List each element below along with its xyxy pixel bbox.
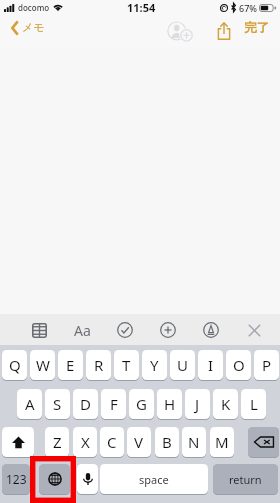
staticText: D	[80, 394, 91, 414]
button[interactable]: F	[101, 389, 126, 419]
button[interactable]: G	[129, 389, 154, 419]
staticText: return	[229, 472, 262, 487]
staticText: Z	[53, 432, 62, 452]
staticText: S	[53, 394, 62, 414]
staticText: X	[81, 432, 90, 452]
staticText: T	[122, 355, 131, 375]
button[interactable]: A	[17, 389, 42, 419]
button[interactable]: return	[213, 464, 278, 494]
staticText: M	[215, 432, 229, 452]
staticText: J	[195, 394, 200, 414]
button[interactable]: 123	[2, 464, 30, 494]
button[interactable]: U	[170, 350, 195, 380]
button[interactable]: C	[100, 427, 124, 457]
button[interactable]: E	[58, 350, 83, 380]
staticText: I	[208, 355, 214, 375]
button[interactable]: H	[157, 389, 182, 419]
button[interactable]: Backspace	[248, 427, 279, 457]
staticText: V	[134, 432, 144, 452]
button[interactable]: Z	[45, 427, 69, 457]
staticText: B	[162, 432, 172, 452]
button[interactable]: M	[210, 427, 234, 457]
button[interactable]: Add attachment	[154, 316, 182, 344]
button[interactable]: D	[73, 389, 98, 419]
button[interactable]: T	[114, 350, 139, 380]
staticText: R	[94, 355, 104, 375]
staticText: space	[139, 472, 169, 487]
button[interactable]: Draw	[197, 316, 225, 344]
button[interactable]: メモ	[6, 15, 53, 47]
button[interactable]: Checklist	[111, 316, 139, 344]
button[interactable]: I	[198, 350, 223, 380]
staticText: メモ	[22, 20, 45, 34]
button[interactable]: S	[45, 389, 70, 419]
staticText: 11:54	[127, 0, 156, 15]
button[interactable]: Shift	[2, 427, 34, 457]
staticText: F	[110, 394, 118, 414]
staticText: 67%	[239, 2, 257, 14]
button[interactable]: R	[86, 350, 111, 380]
button[interactable]: Y	[142, 350, 167, 380]
button[interactable]: K	[213, 389, 238, 419]
staticText: G	[136, 394, 147, 414]
button[interactable]: Q	[2, 350, 27, 380]
staticText: Aa	[74, 321, 91, 340]
button[interactable]: J	[185, 389, 210, 419]
button[interactable]: Add people	[165, 18, 196, 44]
staticText: A	[25, 394, 35, 414]
staticText: O	[233, 355, 245, 375]
staticText: E	[66, 355, 75, 375]
button[interactable]: N	[182, 427, 206, 457]
button[interactable]: P	[254, 350, 279, 380]
button[interactable]: Close keyboard	[240, 316, 268, 344]
staticText: K	[221, 394, 231, 414]
staticText: N	[188, 432, 200, 452]
staticText: docomo	[18, 2, 50, 13]
button[interactable]: O	[226, 350, 251, 380]
button[interactable]: Aa	[68, 316, 96, 344]
staticText: Y	[150, 355, 159, 375]
button[interactable]: X	[73, 427, 97, 457]
staticText: L	[250, 394, 258, 414]
button[interactable]: Dictation	[77, 464, 98, 494]
staticText: 完了	[244, 20, 269, 36]
staticText: W	[36, 355, 50, 375]
staticText: C	[107, 432, 117, 452]
staticText: Q	[9, 355, 21, 375]
button[interactable]: 完了	[241, 15, 271, 41]
staticText: H	[164, 394, 176, 414]
button[interactable]: V	[127, 427, 151, 457]
button[interactable]: W	[30, 350, 55, 380]
staticText: U	[177, 355, 188, 375]
button[interactable]: Table	[25, 316, 53, 344]
button[interactable]: L	[241, 389, 266, 419]
staticText: P	[262, 355, 272, 375]
staticText: 123	[6, 471, 27, 487]
button[interactable]: Change keyboard	[39, 464, 70, 494]
button[interactable]: Share	[212, 18, 235, 44]
button[interactable]: space	[100, 464, 208, 494]
button[interactable]: B	[155, 427, 179, 457]
